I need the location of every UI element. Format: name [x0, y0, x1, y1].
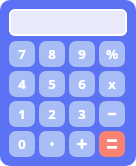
button[interactable]: Equals	[99, 131, 125, 157]
button[interactable]: Five	[39, 71, 65, 97]
button[interactable]: Percent	[99, 41, 125, 67]
staticText: %	[106, 45, 118, 63]
button[interactable]: Three	[69, 101, 95, 127]
button[interactable]	[9, 9, 127, 36]
staticText: 9	[78, 45, 86, 63]
staticText: x	[108, 75, 116, 93]
staticText: 5	[48, 75, 56, 93]
staticText: 6	[78, 75, 86, 93]
button[interactable]: Four	[9, 71, 35, 97]
button[interactable]: Two	[39, 101, 65, 127]
staticText: 1	[18, 105, 26, 123]
button[interactable]: Nine	[69, 41, 95, 67]
staticText: 7	[18, 45, 26, 63]
button[interactable]: Decimal point	[39, 131, 65, 157]
staticText: 3	[78, 105, 86, 123]
button[interactable]: Subtract	[99, 101, 125, 127]
staticText: 0	[18, 135, 26, 153]
staticText: 2	[48, 105, 56, 123]
button[interactable]: One	[9, 101, 35, 127]
button[interactable]: Add	[69, 131, 95, 157]
button[interactable]: Multiply	[99, 71, 125, 97]
staticText: 8	[48, 45, 56, 63]
button[interactable]: Seven	[9, 41, 35, 67]
button[interactable]: Six	[69, 71, 95, 97]
button[interactable]: Zero	[9, 131, 35, 157]
staticText: 4	[18, 75, 26, 93]
button[interactable]: Eight	[39, 41, 65, 67]
